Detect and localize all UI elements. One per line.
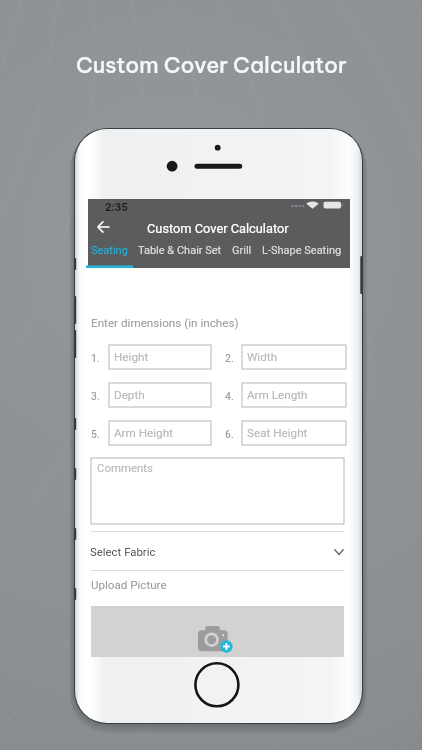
staticText: Arm Length [247, 388, 308, 402]
button[interactable]: Table & Chair Set [133, 242, 227, 268]
staticText: Enter dimensions (in inches) [91, 316, 239, 330]
staticText: Height [114, 350, 149, 364]
staticText: Comments [97, 461, 153, 474]
button[interactable]: Width [242, 345, 346, 369]
staticText: Select Fabric [90, 545, 156, 558]
staticText: 4. [225, 390, 234, 402]
button[interactable]: L-Shape Seating [257, 242, 347, 268]
button[interactable]: Grill [227, 242, 257, 268]
button[interactable]: Height [109, 345, 211, 369]
staticText: Custom Cover Calculator [147, 221, 289, 236]
staticText: 1. [91, 352, 100, 364]
button[interactable]: Comments [91, 458, 344, 524]
button[interactable]: Arm Length [242, 383, 346, 407]
staticText: 2. [225, 352, 234, 364]
button[interactable]: Seating [86, 242, 133, 268]
staticText: L-Shape Seating [262, 244, 342, 257]
staticText: Grill [232, 244, 252, 257]
button[interactable]: Seat Height [242, 421, 346, 445]
button[interactable]: Depth [109, 383, 211, 407]
staticText: Depth [114, 388, 145, 402]
button[interactable]: Upload picture [91, 606, 344, 657]
button[interactable]: Arm Height [109, 421, 211, 445]
staticText: 6. [225, 428, 234, 440]
staticText: Arm Height [114, 426, 173, 440]
staticText: 5. [91, 428, 100, 440]
staticText: 2:35 [105, 200, 128, 213]
staticText: Table & Chair Set [138, 244, 222, 257]
button[interactable]: Select Fabric [91, 532, 344, 570]
staticText: Upload Picture [91, 578, 167, 592]
staticText: 3. [91, 390, 100, 402]
staticText: Seating [91, 244, 128, 257]
staticText: Seat Height [247, 426, 308, 440]
button[interactable]: Back [90, 214, 116, 240]
staticText: Width [247, 350, 278, 364]
staticText: Custom Cover Calculator [76, 51, 347, 78]
